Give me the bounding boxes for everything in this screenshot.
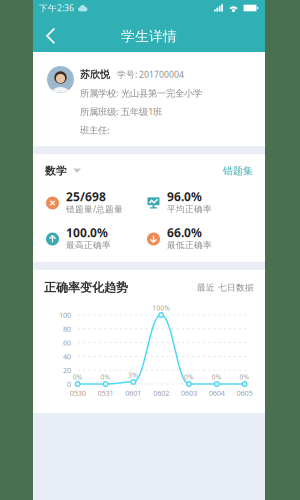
staticText: 下午2:36	[39, 2, 74, 14]
staticText: 0	[67, 379, 71, 389]
staticText: 0605	[237, 388, 253, 398]
staticText: 80	[63, 324, 71, 334]
button[interactable]: 错题集	[223, 159, 253, 183]
staticText: 0604	[209, 388, 225, 398]
staticText: 所属学校: 光山县第一完全小学	[80, 86, 202, 99]
staticText: 0%	[73, 372, 83, 382]
staticText: 25/698	[66, 188, 106, 205]
staticText: 0602	[153, 388, 169, 398]
staticText: 0603	[181, 388, 197, 398]
staticText: 0%	[240, 372, 250, 382]
staticText: 0601	[125, 388, 141, 398]
staticText: 数学	[45, 164, 67, 178]
staticText: 错题集	[223, 165, 253, 177]
staticText: 20	[63, 365, 71, 375]
staticText: 66.0%	[167, 224, 202, 241]
staticText: 0%	[184, 372, 194, 382]
button[interactable]: 数学	[45, 159, 81, 183]
staticText: 100%	[152, 303, 170, 313]
staticText: 所属班级: 五年级1班	[80, 105, 162, 118]
staticText: 错题量/总题量	[66, 203, 123, 215]
staticText: 学生详情	[121, 28, 177, 45]
staticText: 最低正确率	[167, 239, 212, 250]
staticText: 0%	[212, 372, 222, 382]
staticText: 60	[63, 338, 71, 348]
staticText: 班主任:	[80, 124, 110, 136]
staticText: 苏欣悦	[80, 68, 110, 81]
staticText: 100.0%	[66, 224, 108, 241]
staticText: 0%	[100, 372, 110, 382]
staticText: 最高正确率	[66, 239, 111, 250]
staticText: 学号: 201700004	[117, 68, 184, 80]
staticText: 40	[63, 351, 71, 361]
button[interactable]: Back	[33, 16, 68, 52]
staticText: 96.0%	[167, 188, 202, 205]
staticText: 正确率变化趋势	[44, 280, 128, 295]
staticText: 最近 七日数据	[197, 282, 254, 293]
staticText: 0530	[70, 388, 86, 398]
staticText: 3%	[128, 370, 138, 379]
staticText: 100	[59, 310, 71, 320]
staticText: 平均正确率	[167, 203, 212, 214]
staticText: 0531	[97, 388, 113, 398]
